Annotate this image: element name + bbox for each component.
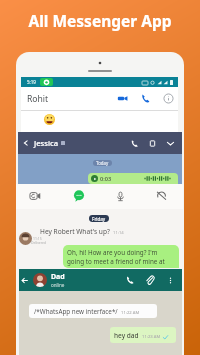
staticText: 11:14 [113,230,124,236]
button[interactable]: Info [162,92,175,105]
button[interactable]: Message [73,190,85,202]
staticText: Oh, hi! How are you doing? I'm going to … [67,248,176,268]
button[interactable]: Attach [144,274,156,286]
button[interactable]: Delete [147,138,158,149]
staticText: Hey Robert What's up? [40,227,110,236]
button[interactable]: More options [166,276,175,285]
button[interactable]: Call [124,274,136,286]
staticText: All Messenger App [0,10,200,31]
staticText: 11:23 AM [142,334,161,340]
staticText: Friday [92,216,106,222]
staticText: online [51,282,65,288]
staticText: 5:19 [27,79,36,85]
button[interactable]: Expand [165,138,176,149]
staticText: Delivered [31,240,47,245]
button[interactable]: Rohit [21,87,178,110]
button[interactable]: Video call [116,92,129,105]
button[interactable]: Call [129,138,140,149]
button[interactable]: Call [139,92,152,105]
button[interactable]: Switch camera [29,190,41,202]
staticText: 11:15 [33,236,42,241]
staticText: 0:03 [100,175,112,183]
staticText: Jessica [34,138,59,148]
staticText: /*WhatsApp new interface*/ [34,307,118,316]
staticText: hey dad [114,331,139,340]
staticText: 11:22 AM [121,310,140,316]
button[interactable]: Jessica [18,132,182,154]
staticText: Dad [51,272,65,282]
button[interactable]: Microphone [115,191,126,202]
button[interactable]: Dad [19,269,182,291]
staticText: Today [96,160,109,166]
button[interactable]: End call [155,189,168,202]
staticText: Rohit [27,93,49,105]
